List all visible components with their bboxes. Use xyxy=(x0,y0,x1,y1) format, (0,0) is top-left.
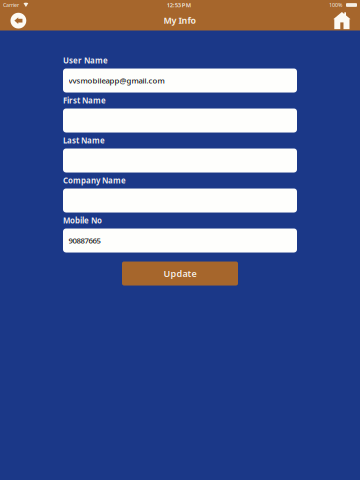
staticText: User Name xyxy=(63,55,108,66)
staticText: 100% xyxy=(329,1,342,9)
staticText: Update xyxy=(163,267,196,280)
staticText: Carrier xyxy=(3,1,19,9)
staticText: First Name xyxy=(63,95,106,106)
button[interactable]: Home xyxy=(327,10,360,30)
staticText: 12:53 PM xyxy=(167,1,191,9)
button[interactable]: Update xyxy=(122,261,238,285)
staticText: Last Name xyxy=(63,135,105,146)
staticText: My Info xyxy=(163,14,196,26)
staticText: vvsmobileapp@gmail.com xyxy=(68,75,164,86)
staticText: Mobile No xyxy=(63,215,102,226)
button[interactable]: Back xyxy=(0,10,32,30)
staticText: 90887665 xyxy=(68,235,100,246)
staticText: Company Name xyxy=(63,175,126,186)
